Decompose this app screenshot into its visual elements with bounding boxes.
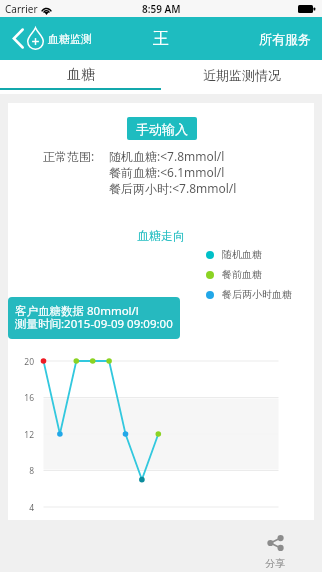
button[interactable]: 近期监测情况 bbox=[161, 60, 322, 90]
staticText: 8 bbox=[29, 465, 34, 477]
staticText: 近期监测情况 bbox=[203, 67, 281, 83]
button[interactable]: 王 bbox=[153, 29, 169, 49]
staticText: 餐前血糖 bbox=[222, 268, 262, 281]
staticText: 血糖走向 bbox=[137, 228, 185, 243]
staticText: 正常范围: bbox=[43, 148, 95, 164]
staticText: 16 bbox=[24, 392, 34, 404]
staticText: 血糖 bbox=[67, 66, 95, 84]
staticText: 4 bbox=[29, 502, 34, 514]
staticText: 餐后两小时血糖 bbox=[222, 288, 292, 301]
button[interactable]: Back bbox=[11, 27, 92, 50]
button[interactable]: 手动输入 bbox=[127, 117, 197, 140]
staticText: 测量时间:2015-09-09 09:09:00 bbox=[15, 316, 173, 332]
staticText: 血糖监测 bbox=[48, 32, 92, 46]
staticText: 8:59 AM bbox=[142, 2, 181, 16]
staticText: Carrier bbox=[5, 2, 38, 16]
button[interactable]: 所有服务 bbox=[259, 31, 311, 47]
staticText: 餐后两小时:<7.8mmol/l bbox=[109, 180, 237, 196]
button[interactable]: Share bbox=[261, 535, 289, 570]
staticText: 手动输入 bbox=[136, 121, 188, 137]
staticText: 20 bbox=[24, 356, 34, 368]
staticText: 随机血糖 bbox=[222, 248, 262, 261]
button[interactable]: 血糖 bbox=[0, 60, 161, 90]
staticText: 12 bbox=[24, 429, 34, 441]
staticText: 随机血糖:<7.8mmol/l bbox=[109, 148, 225, 164]
staticText: 客户血糖数据 80mmol/l bbox=[15, 303, 139, 319]
staticText: 餐前血糖:<6.1mmol/l bbox=[109, 164, 225, 180]
staticText: 分享 bbox=[265, 557, 285, 570]
